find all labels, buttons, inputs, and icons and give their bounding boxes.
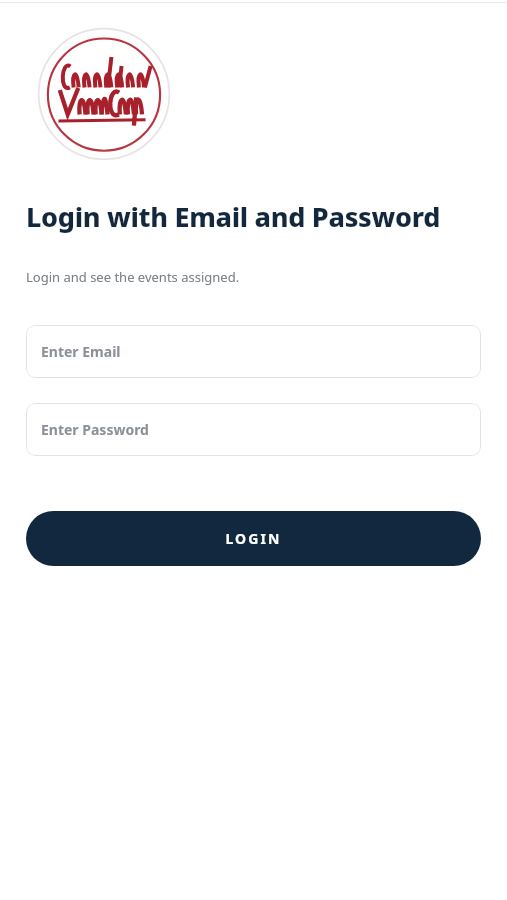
staticText: Enter Password (41, 420, 149, 439)
staticText: Login and see the events assigned. (26, 268, 240, 286)
staticText: LOGIN (225, 529, 282, 548)
button[interactable]: Enter Email (26, 325, 481, 378)
staticText: Login with Email and Password (26, 198, 441, 235)
staticText: Enter Email (41, 342, 121, 361)
button[interactable]: LOGIN (26, 511, 481, 566)
button[interactable]: Enter Password (26, 403, 481, 456)
